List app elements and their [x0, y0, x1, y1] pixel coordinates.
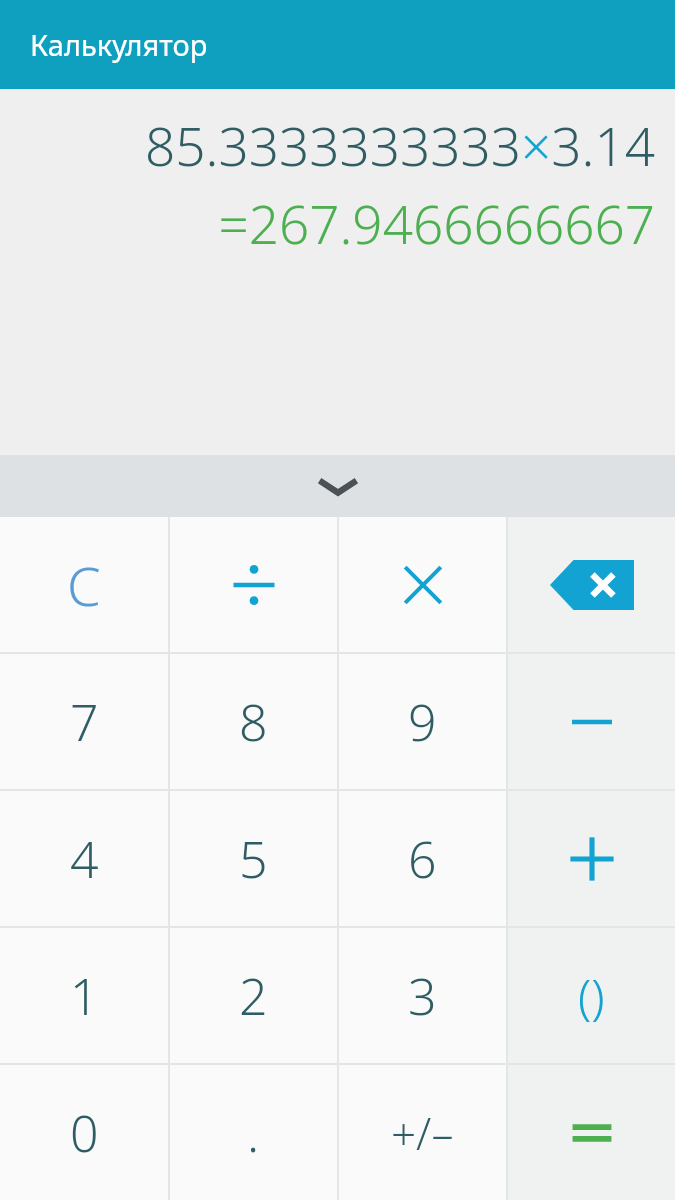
- staticText: 1: [70, 962, 99, 1030]
- button[interactable]: 9: [339, 654, 506, 789]
- button[interactable]: Divide: [170, 517, 337, 652]
- staticText: 4: [70, 825, 99, 893]
- button[interactable]: Plus: [508, 791, 675, 926]
- button[interactable]: Clear: [0, 517, 168, 652]
- button[interactable]: 2: [170, 928, 337, 1063]
- button[interactable]: 5: [170, 791, 337, 926]
- staticText: 8: [239, 688, 268, 756]
- button[interactable]: 1: [0, 928, 168, 1063]
- button[interactable]: Show history: [0, 455, 675, 517]
- button[interactable]: 0: [0, 1065, 168, 1200]
- staticText: +/–: [391, 1103, 454, 1163]
- staticText: 7: [70, 688, 99, 756]
- button[interactable]: Sign change: [339, 1065, 506, 1200]
- button[interactable]: 8: [170, 654, 337, 789]
- staticText: .: [247, 1099, 260, 1167]
- button[interactable]: Minus: [508, 654, 675, 789]
- button[interactable]: Equals: [508, 1065, 675, 1200]
- button[interactable]: Multiply: [339, 517, 506, 652]
- button[interactable]: 6: [339, 791, 506, 926]
- staticText: =267.9466666667: [0, 187, 655, 259]
- staticText: 3: [408, 962, 437, 1030]
- staticText: C: [67, 548, 101, 622]
- button[interactable]: 7: [0, 654, 168, 789]
- staticText: 0: [70, 1099, 99, 1167]
- button[interactable]: Parentheses: [508, 928, 675, 1063]
- staticText: 6: [408, 825, 437, 893]
- staticText: 85.3333333333×3.14: [0, 109, 655, 181]
- staticText: (): [578, 963, 605, 1028]
- staticText: 5: [239, 825, 268, 893]
- button[interactable]: 3: [339, 928, 506, 1063]
- button[interactable]: 4: [0, 791, 168, 926]
- staticText: 2: [239, 962, 268, 1030]
- button[interactable]: Backspace: [508, 517, 675, 652]
- staticText: Калькулятор: [30, 25, 208, 64]
- button[interactable]: .: [170, 1065, 337, 1200]
- staticText: 9: [408, 688, 437, 756]
